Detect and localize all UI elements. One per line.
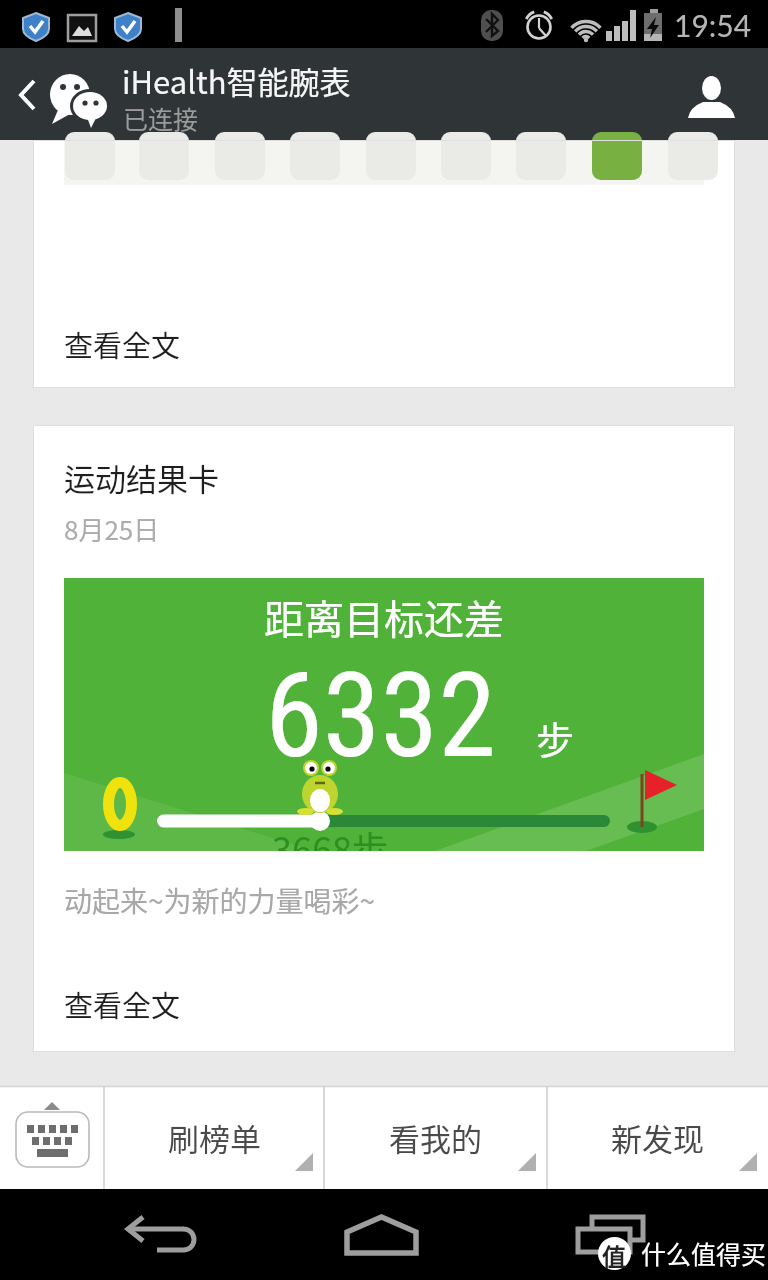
button[interactable]: 看我的 (324, 1086, 547, 1189)
staticText: 已连接 (123, 100, 199, 136)
button[interactable] (0, 48, 48, 140)
staticText: 刷榜单 (168, 1115, 261, 1160)
staticText: 值 (602, 1238, 626, 1273)
staticText: iHealth智能腕表 (122, 58, 351, 103)
staticText: 8月25日 (64, 510, 160, 548)
staticText: 什么值得买 (641, 1235, 767, 1271)
staticText: 查看全文 (64, 323, 181, 365)
button[interactable] (0, 1086, 104, 1189)
button[interactable]: 查看全文 (53, 315, 233, 365)
staticText: 6332 (265, 647, 497, 784)
staticText: 看我的 (389, 1115, 482, 1160)
button[interactable]: 新发现 (547, 1086, 768, 1189)
button[interactable] (311, 1189, 456, 1280)
staticText: 查看全文 (64, 983, 181, 1025)
button[interactable]: 查看全文 (53, 975, 233, 1025)
button[interactable] (676, 48, 768, 140)
staticText: 3668步 (272, 821, 388, 851)
staticText: 新发现 (611, 1115, 704, 1160)
button[interactable]: 刷榜单 (104, 1086, 324, 1189)
button[interactable] (538, 1189, 683, 1280)
staticText: 动起来~为新的力量喝彩~ (64, 880, 376, 921)
staticText: 运动结果卡 (64, 455, 219, 500)
staticText: 距离目标还差 (64, 588, 704, 646)
button[interactable] (85, 1189, 230, 1280)
staticText: 步 (536, 710, 575, 765)
staticText: 19:54 (674, 7, 752, 43)
